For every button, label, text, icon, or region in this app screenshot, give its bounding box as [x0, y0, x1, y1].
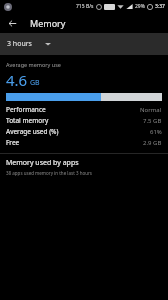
staticText: Memory — [30, 17, 66, 29]
staticText: 2.9 GB — [143, 139, 162, 147]
button[interactable]: Back — [3, 14, 21, 32]
staticText: Memory used by apps — [6, 158, 79, 168]
staticText: GB — [30, 78, 40, 88]
button[interactable]: Average used (%) — [6, 126, 162, 137]
staticText: Performance — [6, 105, 46, 114]
staticText: 38 apps used memory in the last 3 hours — [6, 170, 93, 176]
staticText: Average memory use — [6, 61, 61, 68]
button[interactable]: Free — [6, 137, 162, 148]
button[interactable]: Memory used by apps — [0, 154, 168, 180]
staticText: 4.6 — [6, 70, 28, 90]
staticText: 29% — [135, 3, 145, 10]
staticText: 61% — [150, 128, 162, 136]
staticText: 715 B/s — [76, 3, 94, 10]
button[interactable]: Performance — [6, 104, 162, 115]
button[interactable]: 3 hours — [5, 37, 53, 51]
staticText: Total memory — [6, 116, 49, 125]
staticText: 7.5 GB — [143, 117, 162, 125]
staticText: Normal — [140, 106, 162, 114]
staticText: 3 hours — [7, 39, 32, 49]
button[interactable]: Total memory — [6, 115, 162, 126]
staticText: 3:37 — [155, 3, 165, 10]
staticText: Average used (%) — [6, 127, 59, 136]
staticText: Free — [6, 138, 20, 147]
